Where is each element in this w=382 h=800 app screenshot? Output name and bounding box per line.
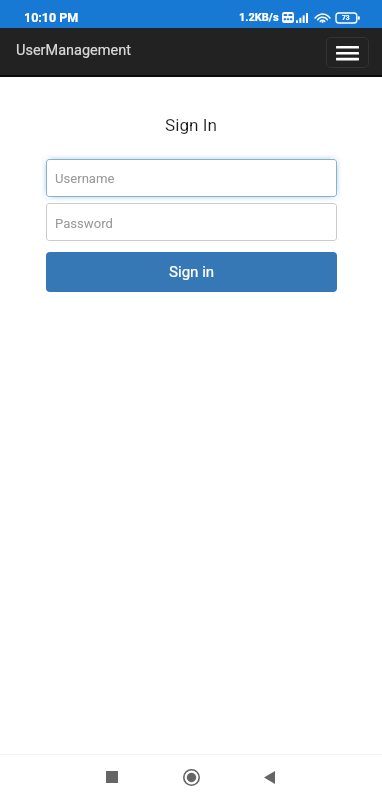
button[interactable]: Password xyxy=(46,203,337,241)
staticText: Sign In xyxy=(0,115,382,135)
staticText: Password xyxy=(55,216,113,231)
button[interactable]: Username xyxy=(46,159,337,197)
staticText: 1.2KB/s xyxy=(239,11,279,24)
staticText: Sign in xyxy=(169,263,215,281)
staticText: 10:10 PM xyxy=(24,10,79,25)
button[interactable]: Back xyxy=(247,755,291,799)
staticText: UserManagement xyxy=(16,42,131,59)
button[interactable]: Recent apps xyxy=(90,755,134,799)
button[interactable]: Open navigation menu xyxy=(326,37,369,68)
button[interactable]: Home xyxy=(169,755,213,799)
staticText: 73 xyxy=(342,14,350,22)
staticText: Username xyxy=(55,171,115,186)
button[interactable]: Sign in xyxy=(46,252,337,292)
